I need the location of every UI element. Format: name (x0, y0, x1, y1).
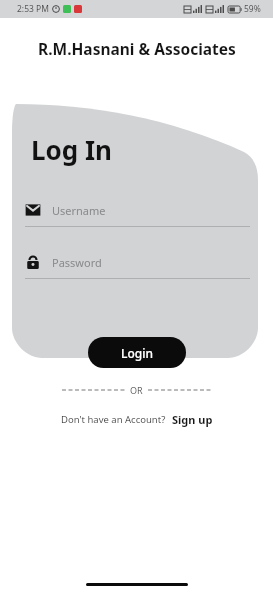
other: Username (25, 202, 41, 218)
other: Password (25, 254, 41, 270)
staticText: Login (121, 345, 153, 361)
button[interactable]: Password (25, 254, 250, 279)
staticText: R.M.Hasnani & Associates (38, 38, 236, 59)
button[interactable]: Username (25, 202, 250, 227)
staticText: 2:53 PM (17, 3, 49, 15)
button[interactable]: Sign up (172, 412, 213, 427)
staticText: Password (52, 255, 102, 270)
staticText: Don't have an Account? (61, 413, 166, 426)
staticText: 59% (244, 3, 261, 15)
staticText: Username (52, 203, 106, 218)
button[interactable]: Login (88, 337, 186, 368)
staticText: OR (130, 384, 143, 396)
staticText: Log In (31, 132, 112, 167)
staticText: Sign up (172, 412, 213, 427)
